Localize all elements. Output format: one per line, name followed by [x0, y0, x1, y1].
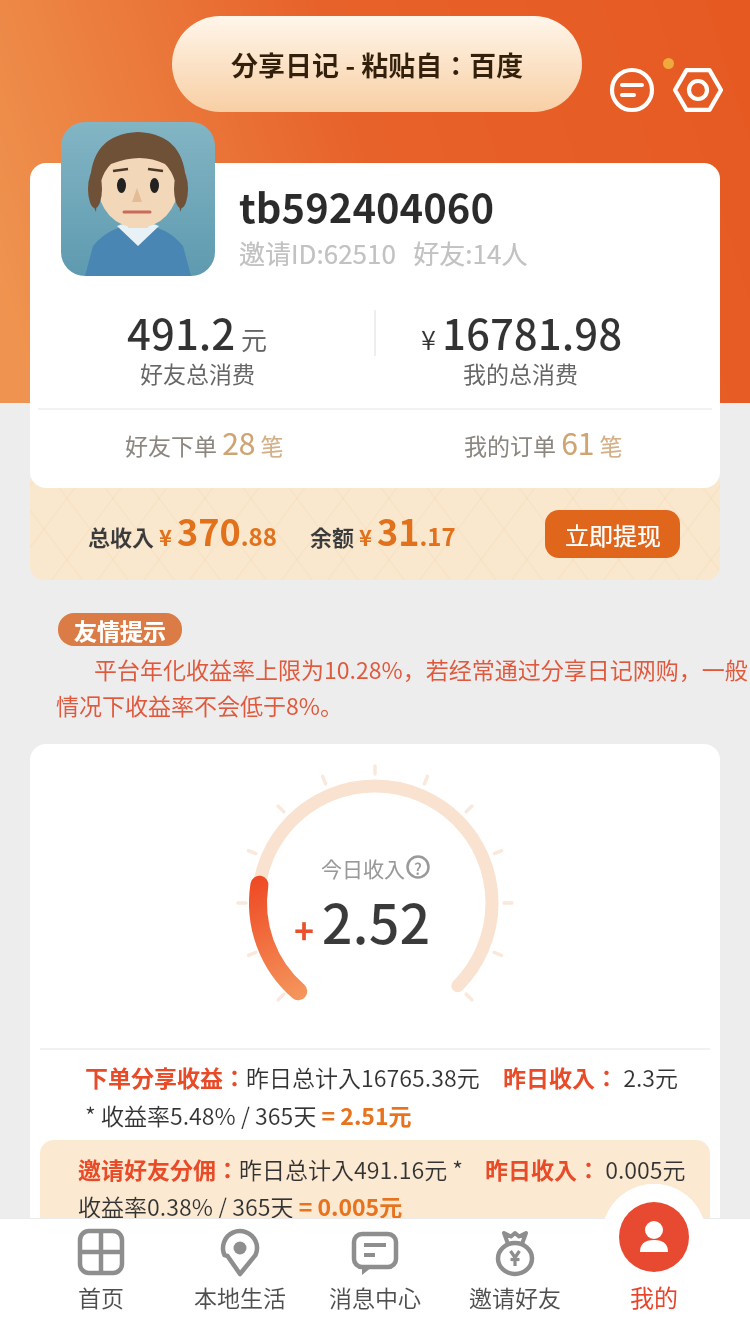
- staticText: * 收益率5.48% / 365天 = 2.51元: [85, 1098, 412, 1131]
- staticText: 总收入 ¥ 370.88: [88, 504, 277, 556]
- staticText: 我的订单 61 笔: [464, 420, 623, 463]
- staticText: 下单分享收益：昨日总计入16765.38元: [85, 1060, 480, 1093]
- staticText: 我的: [630, 1279, 678, 1314]
- button[interactable]: [608, 66, 658, 116]
- staticText: 本地生活: [194, 1280, 286, 1313]
- staticText: 分享日记 - 粘贴自：百度: [231, 45, 524, 84]
- button[interactable]: 消息中心: [305, 1222, 445, 1330]
- staticText: 昨日收入： 0.005元: [485, 1152, 686, 1185]
- staticText: 收益率0.38% / 365天 = 0.005元: [78, 1189, 403, 1222]
- button[interactable]: [430, 415, 660, 467]
- staticText: 好友总消费: [140, 356, 255, 389]
- staticText: 余额 ¥ 31.17: [310, 504, 456, 556]
- staticText: 昨日收入： 2.3元: [503, 1060, 679, 1093]
- staticText: 首页: [78, 1280, 124, 1313]
- staticText: 邀请好友: [469, 1280, 561, 1313]
- button[interactable]: [672, 64, 726, 118]
- button[interactable]: 本地生活: [170, 1222, 310, 1330]
- staticText: ?: [414, 856, 422, 879]
- staticText: 邀请ID:62510 好友:14人: [239, 234, 528, 272]
- staticText: 消息中心: [329, 1280, 421, 1313]
- staticText: 今日收入: [321, 853, 405, 883]
- staticText: 我的总消费: [463, 356, 578, 389]
- staticText: 情况下收益率不会低于8%。: [56, 688, 343, 721]
- button[interactable]: 分享日记 - 粘贴自：百度: [172, 16, 582, 112]
- staticText: ¥ 16781.98: [421, 301, 623, 362]
- button[interactable]: 首页: [31, 1222, 171, 1330]
- staticText: + 2.52: [294, 881, 431, 959]
- button[interactable]: 邀请好友: [445, 1222, 585, 1330]
- staticText: 好友下单 28 笔: [125, 420, 284, 463]
- staticText: 平台年化收益率上限为10.28%，若经常通过分享日记网购，一般: [94, 652, 748, 685]
- staticText: tb592404060: [239, 177, 494, 235]
- button[interactable]: [90, 415, 320, 467]
- button[interactable]: [619, 1202, 689, 1272]
- staticText: 491.2 元: [127, 301, 268, 362]
- button[interactable]: 立即提现: [545, 510, 680, 558]
- staticText: 立即提现: [565, 517, 661, 552]
- staticText: 邀请好友分佣：昨日总计入491.16元 *: [78, 1152, 464, 1185]
- staticText: 友情提示: [74, 613, 166, 646]
